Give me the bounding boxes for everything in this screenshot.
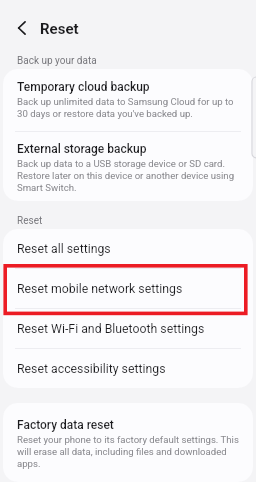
button[interactable]: Factory data reset [3,403,253,482]
button[interactable]: Reset accessibility settings [3,349,253,388]
staticText: Back up unlimited data to Samsung Cloud … [17,96,242,120]
staticText: Temporary cloud backup [17,80,150,94]
button[interactable]: Reset mobile network settings [3,269,253,308]
staticText: Reset your phone to its factory default … [17,434,242,470]
staticText: Reset [40,20,79,38]
button[interactable]: Temporary cloud backup [3,69,253,131]
staticText: Reset accessibility settings [17,361,166,376]
button[interactable]: External storage backup [3,132,253,201]
staticText: Reset Wi-Fi and Bluetooth settings [17,321,205,336]
button[interactable]: Reset Wi-Fi and Bluetooth settings [3,309,253,348]
staticText: External storage backup [17,142,147,156]
staticText: Back up your data [17,54,97,66]
staticText: Reset mobile network settings [17,281,183,296]
staticText: Reset [17,214,43,226]
staticText: Factory data reset [17,418,114,432]
button[interactable]: Reset all settings [3,229,253,268]
button[interactable]: Back [8,14,36,42]
staticText: Reset all settings [17,241,111,256]
staticText: Back up data to a USB storage device or … [17,158,242,194]
